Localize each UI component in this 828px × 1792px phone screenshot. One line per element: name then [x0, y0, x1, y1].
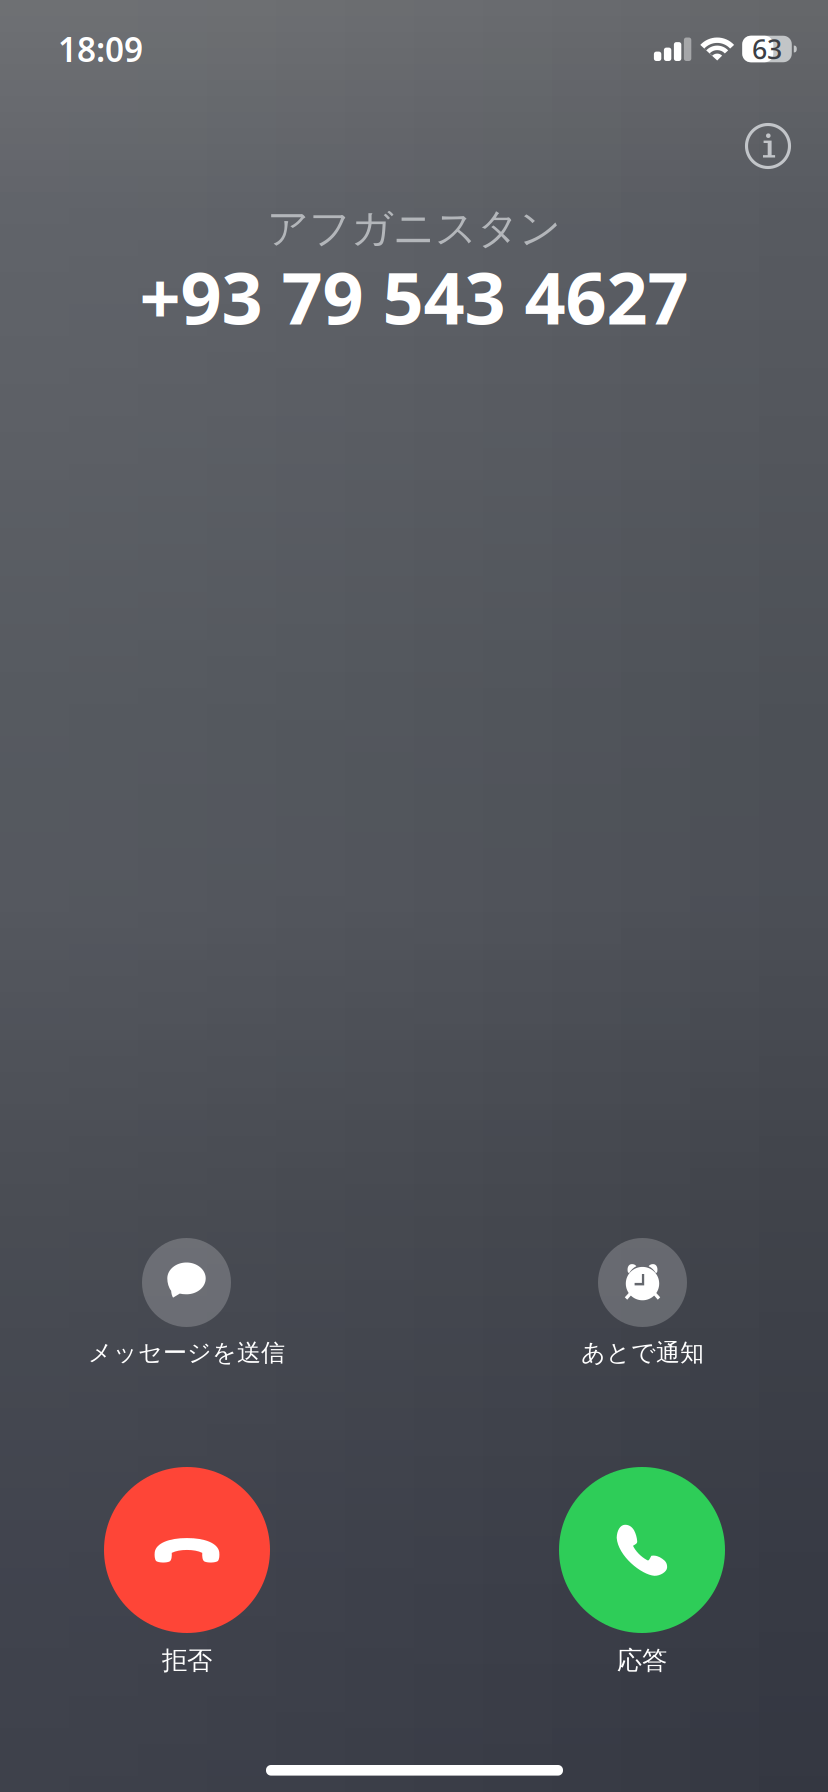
button[interactable]: 拒否 [37, 1467, 337, 1676]
staticText: 応答 [617, 1645, 667, 1676]
button[interactable]: あとで通知 [492, 1238, 792, 1367]
staticText: あとで通知 [581, 1338, 704, 1367]
staticText: 63 [752, 31, 782, 67]
staticText: アフガニスタン [267, 203, 561, 254]
button[interactable]: 通話の詳細 [726, 104, 810, 188]
button[interactable]: 応答 [492, 1467, 792, 1676]
staticText: +93 79 543 4627 [139, 249, 688, 344]
staticText: メッセージを送信 [88, 1338, 285, 1367]
staticText: 18:09 [58, 27, 143, 71]
button[interactable]: メッセージを送信 [36, 1238, 336, 1367]
staticText: 拒否 [162, 1645, 212, 1676]
